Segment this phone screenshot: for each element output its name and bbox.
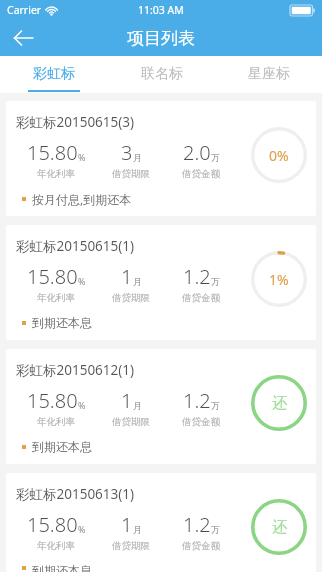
staticText: 借贷金额	[182, 292, 220, 304]
button[interactable]: 彩虹标	[0, 56, 108, 93]
staticText: 3	[121, 139, 133, 166]
staticText: 1%	[269, 270, 289, 289]
staticText: 2.0	[183, 139, 211, 166]
staticText: 彩虹标20150615(1)	[16, 237, 135, 255]
button[interactable]: Progress 1%	[251, 251, 307, 307]
button[interactable]: 彩虹标20150615(3)	[6, 101, 316, 216]
staticText: %	[78, 523, 86, 535]
staticText: 15.80	[27, 387, 78, 414]
staticText: 借贷金额	[182, 540, 220, 552]
button[interactable]: 星座标	[215, 56, 322, 93]
staticText: 万	[211, 276, 220, 287]
staticText: 15.80	[27, 511, 78, 538]
staticText: 借贷期限	[112, 292, 150, 304]
staticText: %	[78, 275, 86, 287]
staticText: 1	[121, 387, 133, 414]
staticText: 借贷金额	[182, 416, 220, 428]
staticText: 借贷期限	[112, 168, 150, 180]
staticText: 还	[272, 518, 287, 537]
staticText: 彩虹标	[33, 65, 75, 83]
staticText: 到期还本息	[32, 563, 92, 572]
staticText: 借贷期限	[112, 416, 150, 428]
staticText: Carrier	[7, 3, 42, 17]
staticText: 还	[272, 394, 287, 413]
staticText: 1.2	[183, 263, 211, 290]
staticText: 借贷期限	[112, 540, 150, 552]
staticText: 星座标	[248, 65, 290, 83]
staticText: 到期还本息	[32, 315, 92, 330]
button[interactable]: Back	[0, 20, 46, 56]
staticText: 11:03 AM	[138, 3, 184, 17]
staticText: 年化利率	[37, 168, 75, 180]
button[interactable]: Progress 0%	[251, 127, 307, 183]
staticText: 彩虹标20150612(1)	[16, 361, 135, 379]
staticText: 联名标	[141, 65, 183, 83]
staticText: 万	[211, 524, 220, 535]
button[interactable]: Repay	[251, 375, 307, 431]
button[interactable]: Repay	[251, 499, 307, 555]
staticText: 月	[133, 400, 142, 411]
staticText: 项目列表	[127, 28, 195, 49]
staticText: 1	[121, 263, 133, 290]
staticText: %	[78, 151, 86, 163]
staticText: 年化利率	[37, 540, 75, 552]
staticText: 0%	[269, 146, 289, 165]
staticText: 年化利率	[37, 292, 75, 304]
staticText: %	[78, 399, 86, 411]
staticText: 借贷金额	[182, 168, 220, 180]
staticText: 15.80	[27, 139, 78, 166]
staticText: 彩虹标20150615(3)	[16, 113, 135, 131]
staticText: 1.2	[183, 387, 211, 414]
staticText: 月	[133, 524, 142, 535]
staticText: 年化利率	[37, 416, 75, 428]
staticText: 月	[133, 152, 142, 163]
staticText: 万	[211, 400, 220, 411]
staticText: 1	[121, 511, 133, 538]
staticText: 彩虹标20150613(1)	[16, 485, 135, 503]
staticText: 万	[211, 152, 220, 163]
button[interactable]: 彩虹标20150615(1)	[6, 225, 316, 340]
button[interactable]: 彩虹标20150613(1)	[6, 473, 316, 572]
staticText: 到期还本息	[32, 439, 92, 454]
button[interactable]: 联名标	[108, 56, 215, 93]
staticText: 15.80	[27, 263, 78, 290]
staticText: 月	[133, 276, 142, 287]
staticText: 按月付息,到期还本	[32, 191, 132, 207]
button[interactable]: 彩虹标20150612(1)	[6, 349, 316, 464]
staticText: 1.2	[183, 511, 211, 538]
